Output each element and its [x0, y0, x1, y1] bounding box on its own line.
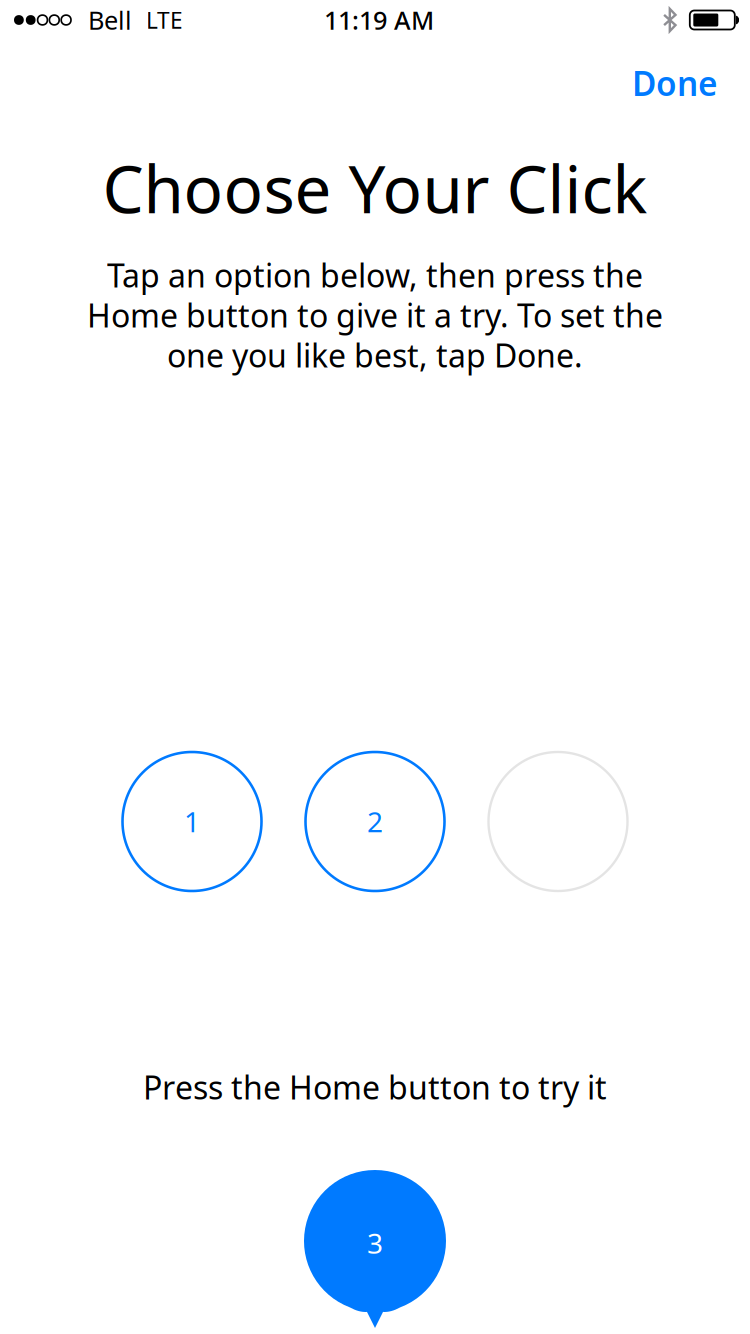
staticText: 2 — [367, 803, 383, 840]
button[interactable]: Click option 3 — [488, 752, 627, 891]
button[interactable]: Click option 1 — [122, 752, 261, 891]
button[interactable]: Selected click option 3 — [304, 1170, 446, 1328]
button[interactable]: Done — [614, 49, 736, 117]
staticText: Choose Your Click — [102, 145, 647, 231]
staticText: LTE — [146, 5, 183, 35]
staticText: Press the Home button to try it — [143, 1066, 607, 1108]
staticText: 11:19 AM — [324, 3, 434, 37]
staticText: 3 — [367, 1224, 383, 1262]
staticText: one you like best, tap Done. — [167, 334, 583, 376]
staticText: Done — [632, 61, 718, 105]
staticText: Home button to give it a try. To set the — [87, 294, 663, 336]
button[interactable]: Click option 2 — [305, 752, 444, 891]
staticText: Tap an option below, then press the — [107, 254, 643, 296]
staticText: 1 — [184, 803, 200, 840]
staticText: Bell — [88, 3, 132, 37]
